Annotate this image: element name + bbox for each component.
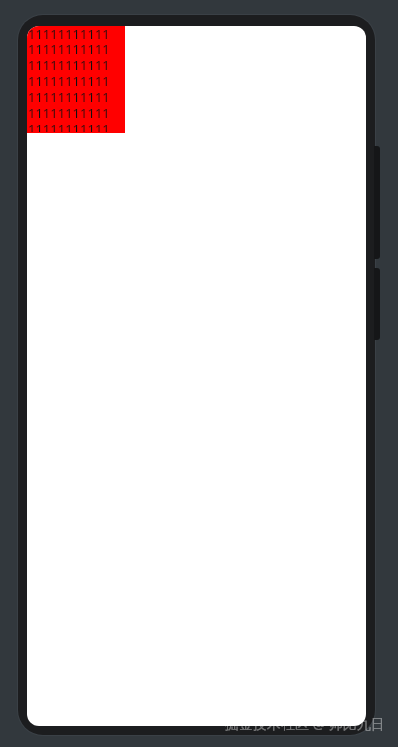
- staticText: 11111111111 11111111111 11111111111 1111…: [28, 26, 110, 132]
- button[interactable]: 11111111111 11111111111 11111111111 1111…: [27, 26, 125, 133]
- staticText: 掘金技术社区 @ 帅比九日: [225, 714, 385, 733]
